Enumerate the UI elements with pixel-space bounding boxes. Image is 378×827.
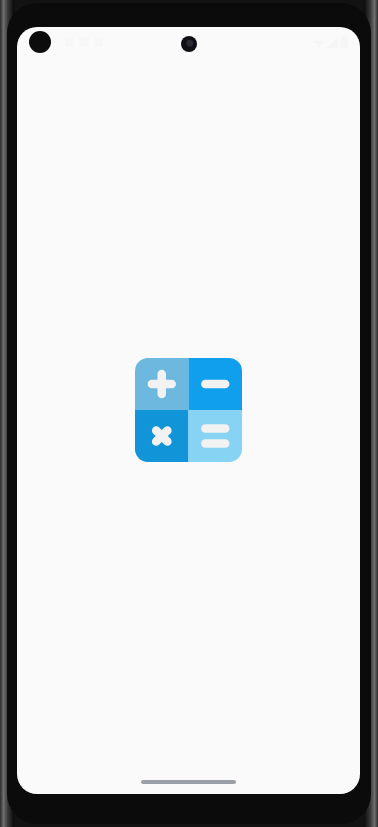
button[interactable]: Calculator xyxy=(135,358,242,462)
